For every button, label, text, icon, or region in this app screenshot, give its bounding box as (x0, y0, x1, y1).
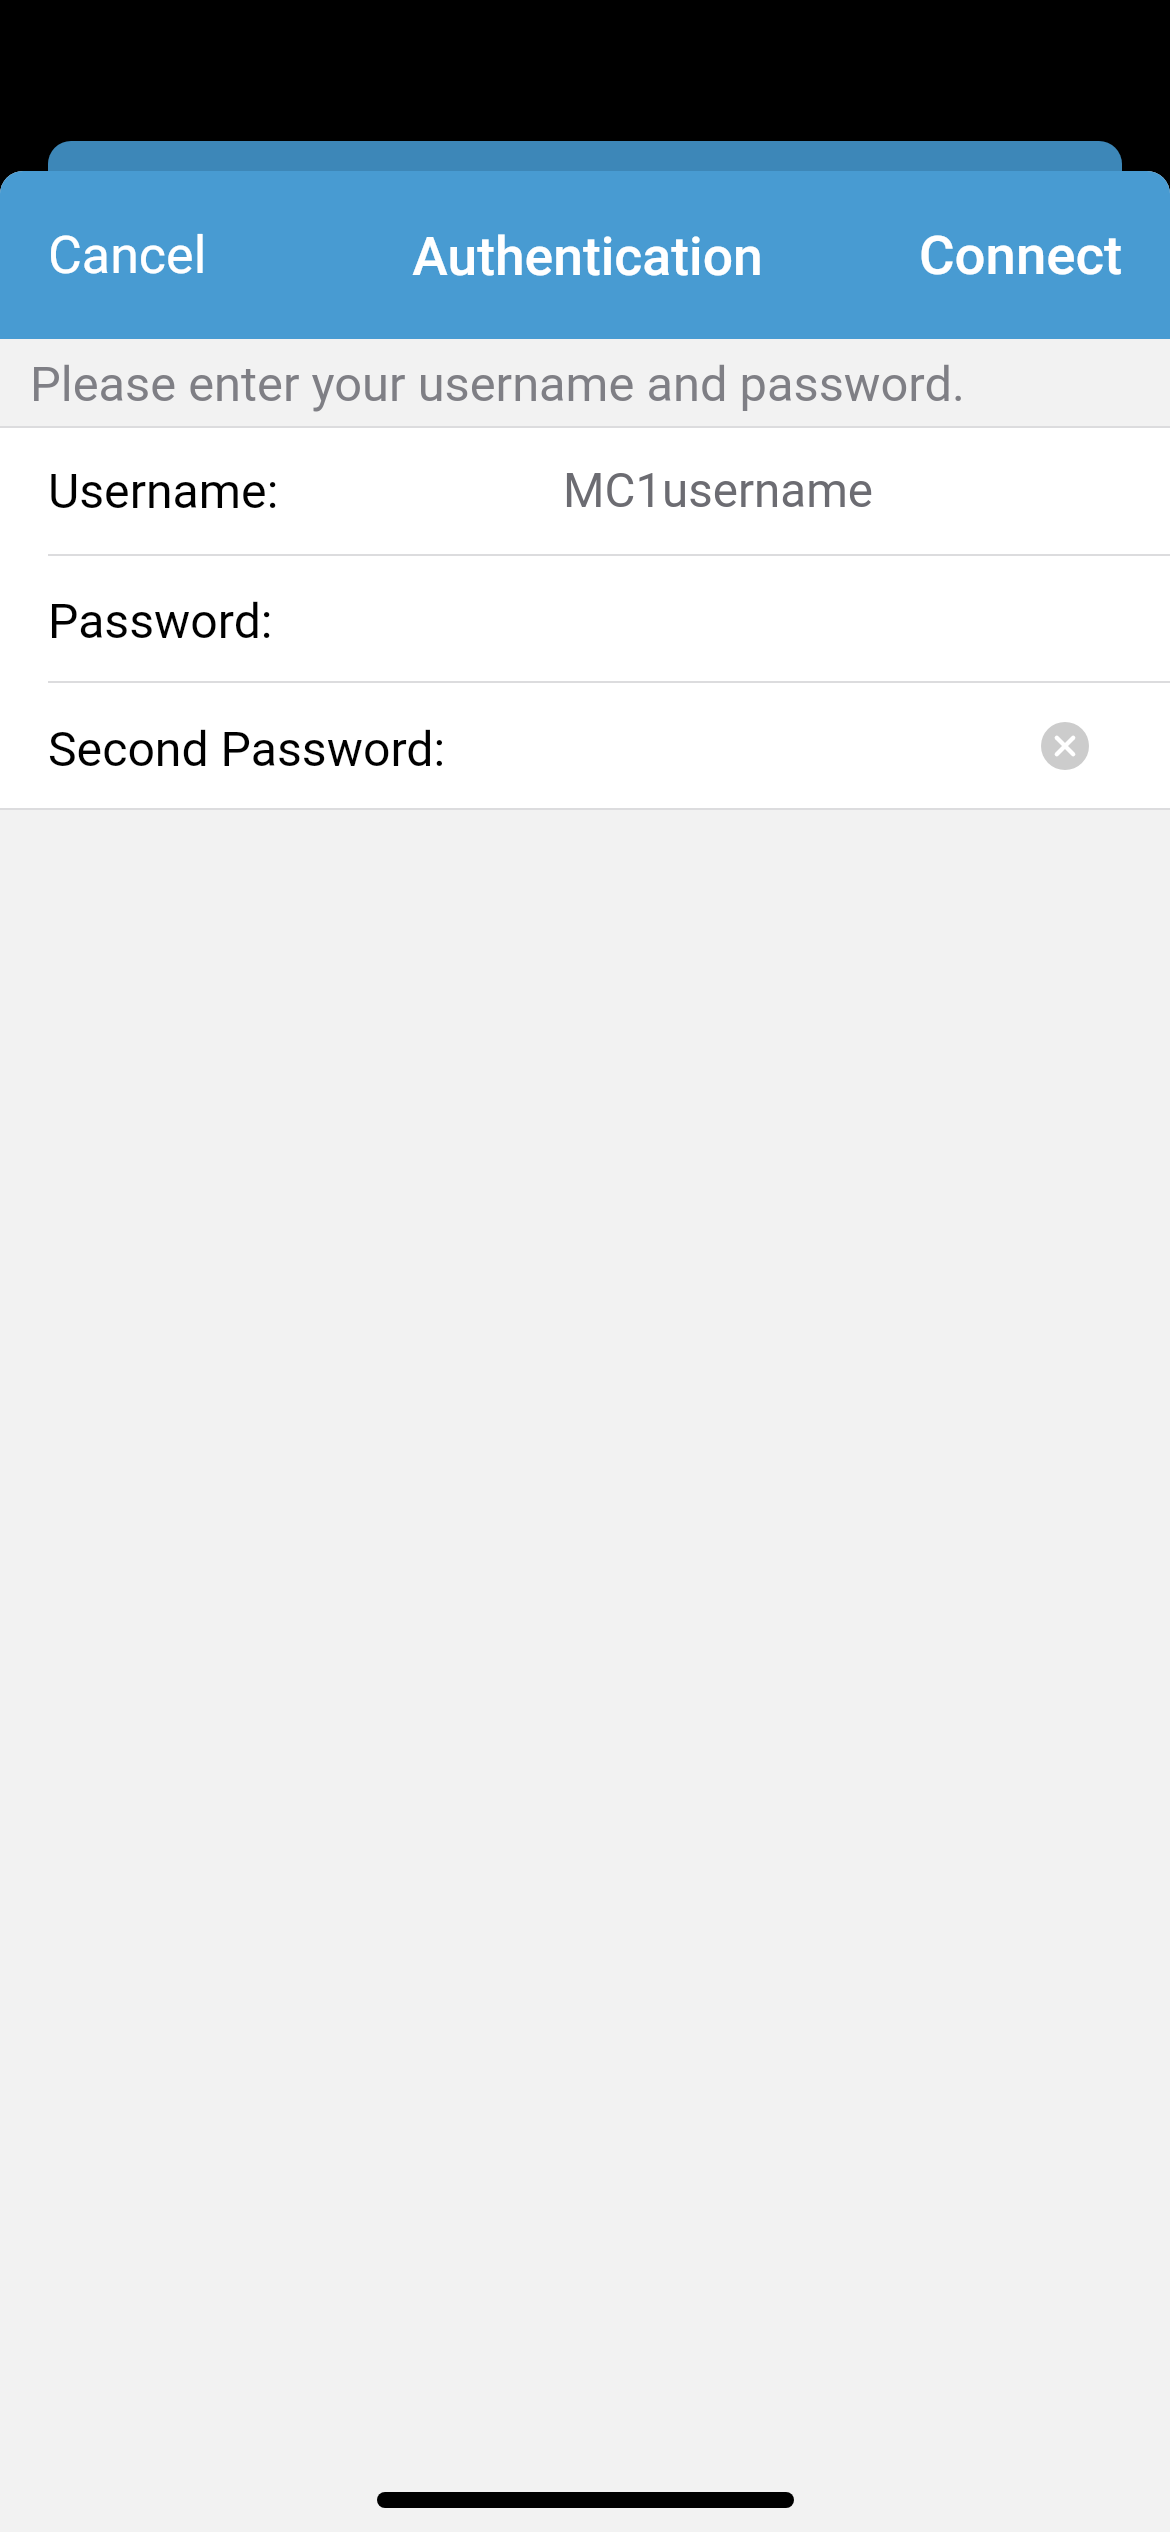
staticText: Please enter your username and password. (30, 356, 965, 413)
staticText: Second Password: (48, 721, 446, 777)
button[interactable]: Connect (879, 171, 1170, 339)
staticText: Cancel (48, 225, 207, 286)
button[interactable]: Password: (0, 556, 1170, 683)
staticText: Authentication (412, 225, 763, 288)
staticText: Username: (48, 463, 279, 519)
button[interactable]: Second Password: (0, 683, 1170, 810)
button[interactable]: Username: (0, 428, 1170, 556)
staticText: Password: (48, 593, 273, 649)
button[interactable]: Cancel (0, 171, 247, 339)
button[interactable]: Clear text (1041, 722, 1089, 770)
staticText: MC1username (563, 463, 873, 519)
staticText: Connect (919, 223, 1123, 287)
